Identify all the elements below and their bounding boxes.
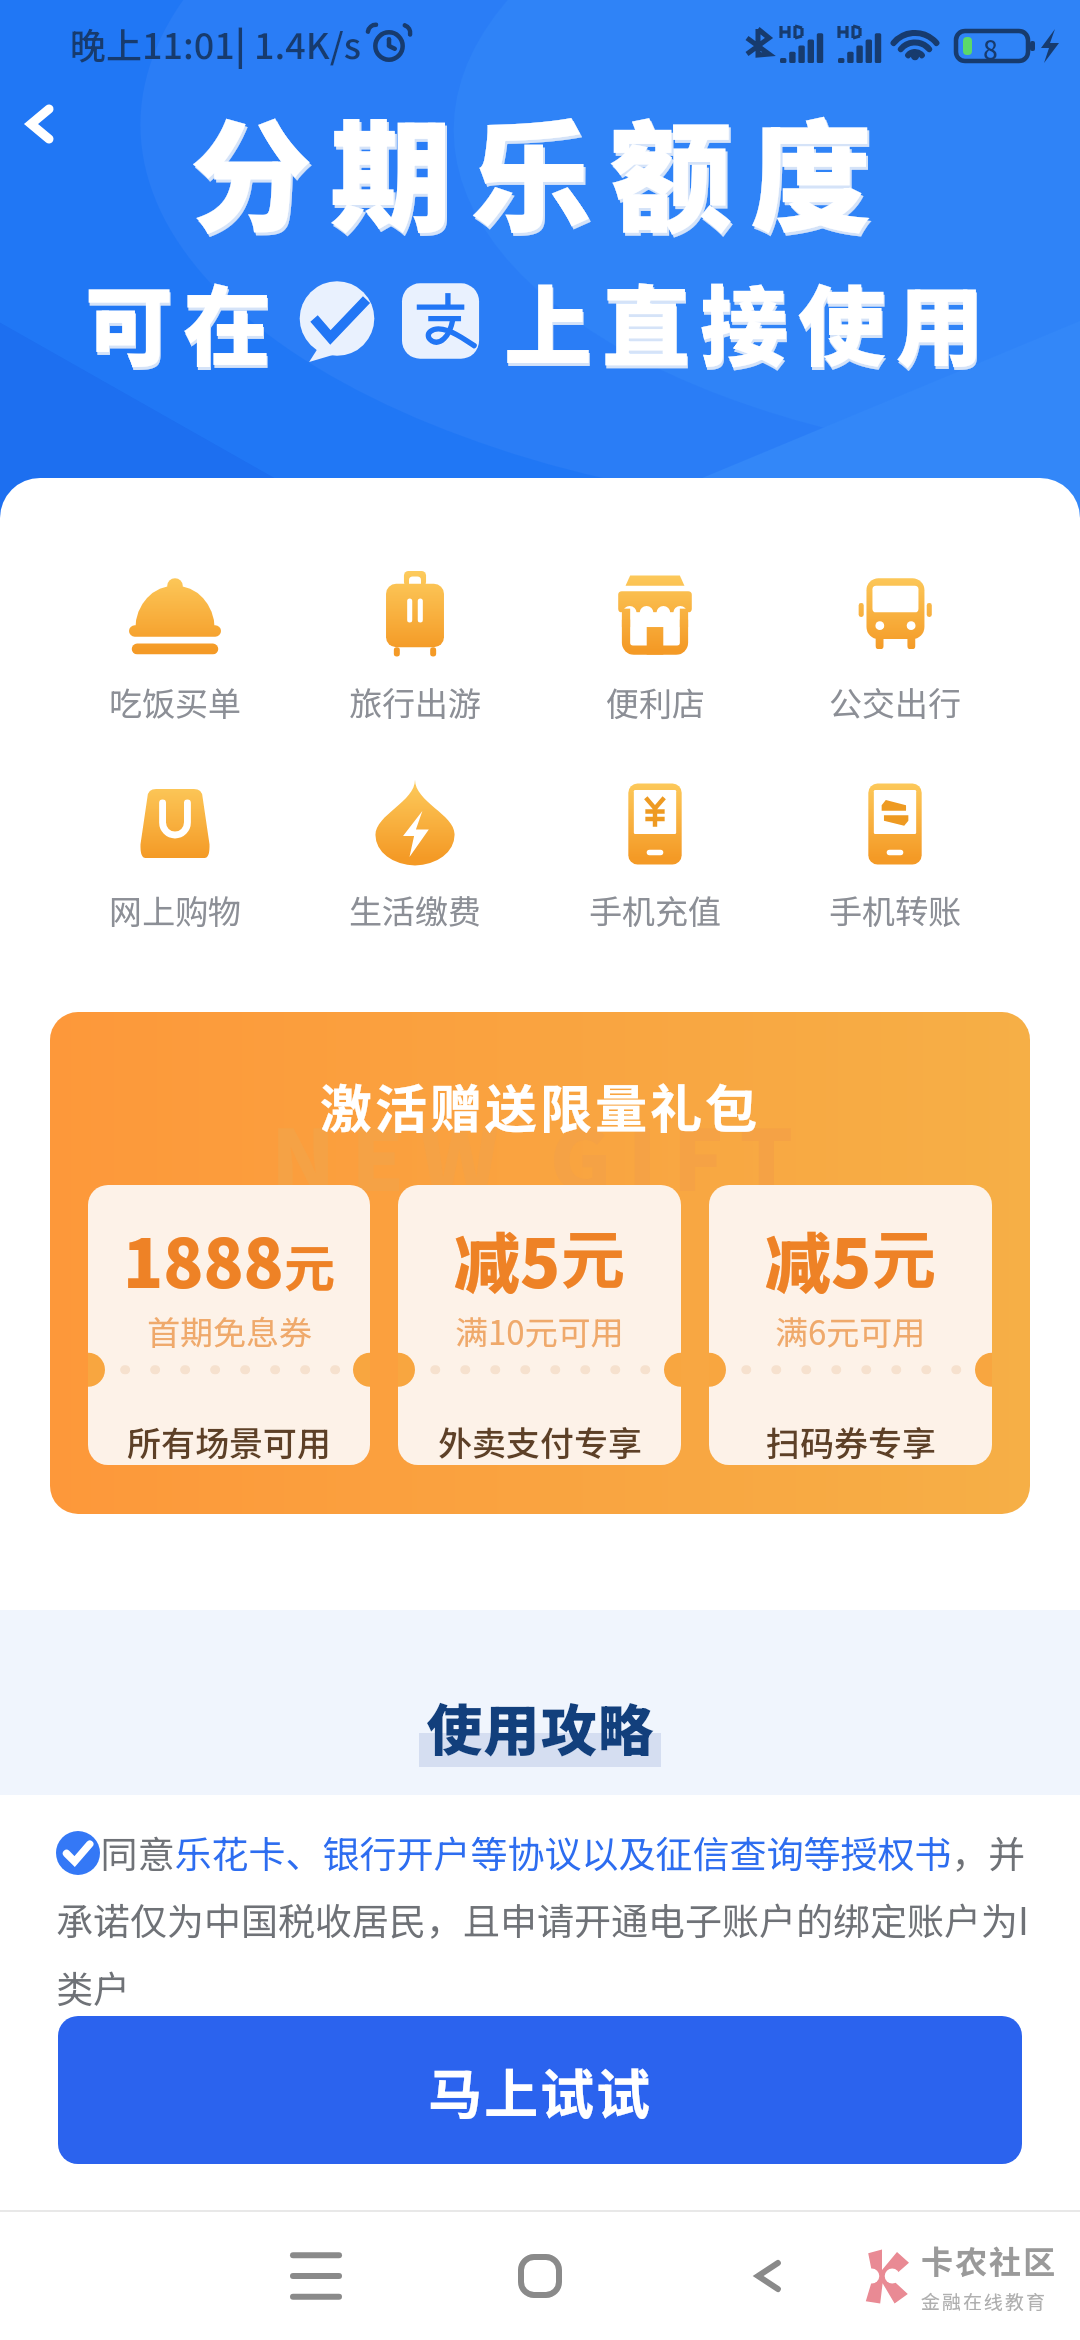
staticText: 减5	[765, 1211, 872, 1307]
button[interactable]: 使用攻略	[426, 1686, 654, 1767]
staticText: 外卖支付专享	[438, 1417, 642, 1465]
staticText: 晚上11:01	[70, 17, 235, 69]
staticText: 同意乐花卡、银行开户等协议以及征信查询等授权书，并承诺仅为中国税收居民，且申请开…	[56, 1825, 1032, 2014]
staticText: 吃饭买单	[109, 678, 241, 726]
button[interactable]: 手机转账	[775, 778, 1015, 934]
staticText: 1.4K/s	[246, 17, 362, 69]
staticText: 扫码券专享	[766, 1417, 936, 1465]
staticText: 可在	[85, 257, 282, 384]
staticText: 减5	[454, 1211, 561, 1307]
staticText: 马上试试	[428, 2051, 652, 2129]
button[interactable]: Back	[4, 88, 76, 160]
staticText: 元	[872, 1209, 936, 1302]
staticText: 元	[561, 1209, 625, 1302]
button[interactable]: Agree checkbox	[56, 1831, 100, 1875]
button[interactable]: 吃饭买单	[55, 570, 295, 726]
staticText: 金融在线教育	[921, 2287, 1048, 2315]
staticText: 卡农社区	[921, 2237, 1058, 2283]
staticText: 手机转账	[829, 886, 961, 934]
button[interactable]: 手机充值	[535, 778, 775, 934]
staticText: 分期乐额度	[192, 83, 892, 260]
staticText: 上直接使用	[504, 257, 995, 384]
staticText: 网上购物	[109, 886, 241, 934]
staticText: 可在	[86, 260, 283, 387]
staticText: 8	[983, 30, 998, 68]
staticText: |	[235, 17, 246, 69]
staticText: 手机充值	[589, 886, 721, 934]
button[interactable]: 马上试试	[58, 2016, 1022, 2164]
button[interactable]: 公交出行	[775, 570, 1015, 726]
staticText: 满10元可用	[455, 1307, 624, 1355]
staticText: 元	[284, 1228, 336, 1302]
button[interactable]: Back	[728, 2236, 808, 2316]
button[interactable]: 生活缴费	[295, 778, 535, 934]
staticText: NEW GIFT	[271, 1094, 810, 1216]
staticText: 上直接使用	[505, 260, 996, 387]
staticText: 满6元可用	[775, 1307, 926, 1355]
button[interactable]: 旅行出游	[295, 570, 535, 726]
staticText: 分期乐额度	[190, 80, 890, 257]
button[interactable]: 便利店	[535, 570, 775, 726]
button[interactable]: Home	[500, 2236, 580, 2316]
button[interactable]: 减5	[398, 1185, 681, 1465]
button[interactable]: Recents	[276, 2236, 356, 2316]
staticText: 所有场景可用	[127, 1417, 331, 1465]
staticText: 1888	[123, 1211, 284, 1307]
staticText: 旅行出游	[349, 678, 481, 726]
button[interactable]: 1888	[88, 1185, 370, 1465]
staticText: 便利店	[606, 678, 705, 726]
staticText: 首期免息券	[147, 1307, 312, 1355]
button[interactable]: 网上购物	[55, 778, 295, 934]
staticText: 激活赠送限量礼包	[320, 1068, 761, 1143]
staticText: 生活缴费	[349, 886, 481, 934]
button[interactable]: 减5	[709, 1185, 992, 1465]
staticText: 公交出行	[829, 678, 961, 726]
